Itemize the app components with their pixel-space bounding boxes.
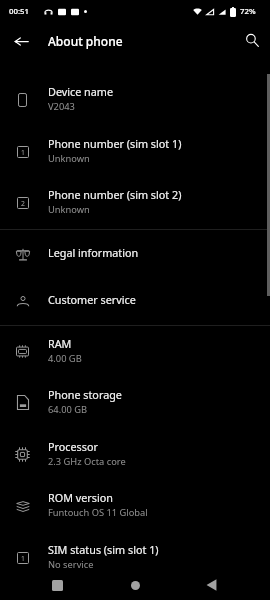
staticText: Funtouch OS 11 Global [48,506,148,519]
staticText: Unknown [48,203,90,216]
staticText: RAM [48,336,72,351]
staticText: Device name [48,84,114,99]
staticText: Unknown [48,152,90,165]
button[interactable]: 1 [0,532,270,583]
button[interactable]: Phone storage [0,377,270,428]
staticText: Phone storage [48,387,122,402]
button[interactable]: ROM version [0,480,270,531]
staticText: 1 [21,554,25,563]
staticText: 4.00 GB [48,352,82,365]
staticText: 2.3 GHz Octa core [48,455,126,468]
button[interactable]: Device name [0,74,270,125]
staticText: Processor [48,439,98,454]
button[interactable]: Home [122,572,148,598]
button[interactable]: Back [8,28,34,54]
button[interactable]: 2 [0,177,270,228]
button[interactable]: Processor [0,429,270,480]
button[interactable]: Recent apps [44,572,70,598]
staticText: 2 [21,199,25,208]
staticText: Phone number (sim slot 2) [48,187,182,202]
staticText: No service [48,558,94,571]
staticText: V2043 [48,100,75,113]
button[interactable]: Search [239,27,265,53]
staticText: 1 [21,148,25,157]
button[interactable]: RAM [0,326,270,377]
staticText: ROM version [48,490,113,505]
staticText: Customer service [48,292,136,307]
staticText: Legal information [48,245,139,260]
button[interactable]: Back [198,572,224,598]
button[interactable]: Legal information [0,230,270,278]
staticText: 72% [240,6,256,17]
staticText: SIM status (sim slot 1) [48,542,159,557]
staticText: 64.00 GB [48,403,87,416]
staticText: 00:51 [9,6,29,17]
staticText: Phone number (sim slot 1) [48,136,182,151]
staticText: About phone [48,33,123,49]
button[interactable]: 1 [0,126,270,177]
button[interactable]: Customer service [0,277,270,325]
